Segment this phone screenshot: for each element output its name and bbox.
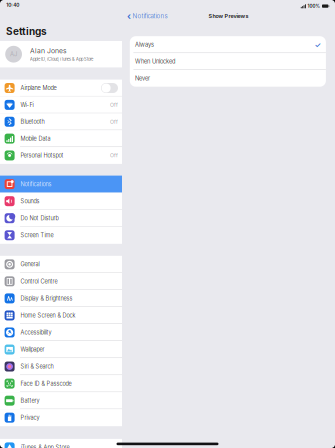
button[interactable]: Airplane Mode bbox=[0, 80, 122, 96]
staticText: Privacy bbox=[20, 414, 39, 421]
staticText: AJ bbox=[10, 51, 17, 58]
staticText: Settings bbox=[6, 25, 47, 37]
staticText: Bluetooth bbox=[20, 118, 44, 125]
staticText: Control Centre bbox=[20, 278, 57, 285]
button[interactable]: Never bbox=[130, 70, 326, 87]
button[interactable]: Screen Time bbox=[0, 227, 122, 244]
staticText: Airplane Mode bbox=[20, 85, 56, 91]
button[interactable]: Sounds bbox=[0, 193, 122, 210]
button[interactable]: Siri & Search bbox=[0, 358, 122, 375]
button[interactable]: General bbox=[0, 256, 122, 273]
staticText: Show Previews bbox=[208, 13, 248, 19]
button[interactable]: Wi-Fi bbox=[0, 96, 122, 113]
staticText: Mobile Data bbox=[20, 135, 50, 142]
button[interactable]: Home Screen & Dock bbox=[0, 307, 122, 324]
button[interactable]: Personal Hotspot bbox=[0, 147, 122, 164]
button[interactable]: Bluetooth bbox=[0, 113, 122, 130]
button[interactable]: Face ID & Passcode bbox=[0, 375, 122, 392]
button[interactable]: Mobile Data bbox=[0, 130, 122, 147]
button[interactable]: ‹ bbox=[122, 9, 171, 23]
staticText: 10:40 bbox=[6, 2, 19, 8]
staticText: ‹ bbox=[127, 10, 131, 22]
staticText: Apple ID, iCloud, iTunes & App Store bbox=[30, 57, 93, 62]
button[interactable]: Control Centre bbox=[0, 273, 122, 290]
staticText: Siri & Search bbox=[20, 363, 53, 370]
staticText: Wi-Fi bbox=[20, 101, 33, 108]
staticText: Alan Jones bbox=[30, 47, 67, 55]
staticText: Accessibility bbox=[20, 329, 51, 336]
staticText: Always bbox=[135, 41, 154, 48]
button[interactable]: Always bbox=[130, 36, 326, 53]
staticText: Notifications bbox=[132, 12, 167, 20]
button[interactable]: Display & Brightness bbox=[0, 290, 122, 307]
button[interactable]: When Unlocked bbox=[130, 53, 326, 70]
button[interactable]: AJ bbox=[0, 41, 122, 67]
staticText: Home Screen & Dock bbox=[20, 312, 75, 319]
button[interactable]: Battery bbox=[0, 392, 122, 409]
staticText: Off bbox=[110, 152, 118, 159]
button[interactable]: Privacy bbox=[0, 409, 122, 426]
staticText: General bbox=[20, 261, 39, 268]
staticText: Display & Brightness bbox=[20, 295, 72, 302]
button[interactable]: Accessibility bbox=[0, 324, 122, 341]
staticText: Notifications bbox=[20, 181, 51, 187]
button[interactable]: Wallpaper bbox=[0, 341, 122, 358]
staticText: Face ID & Passcode bbox=[20, 380, 71, 387]
staticText: iTunes & App Store bbox=[20, 444, 69, 448]
staticText: Wallpaper bbox=[20, 346, 44, 353]
staticText: Screen Time bbox=[20, 232, 53, 239]
staticText: When Unlocked bbox=[135, 58, 175, 65]
staticText: Off bbox=[110, 102, 118, 108]
button[interactable]: iTunes & App Store bbox=[0, 439, 122, 448]
staticText: Personal Hotspot bbox=[20, 152, 63, 159]
staticText: Sounds bbox=[20, 198, 39, 205]
staticText: 100% bbox=[308, 3, 321, 9]
staticText: Do Not Disturb bbox=[20, 215, 58, 222]
staticText: Battery bbox=[20, 397, 39, 404]
button[interactable]: Do Not Disturb bbox=[0, 210, 122, 227]
staticText: Never bbox=[135, 75, 150, 82]
staticText: Off bbox=[110, 119, 118, 125]
staticText: ✓ bbox=[314, 40, 320, 49]
button[interactable]: Notifications bbox=[0, 176, 122, 193]
